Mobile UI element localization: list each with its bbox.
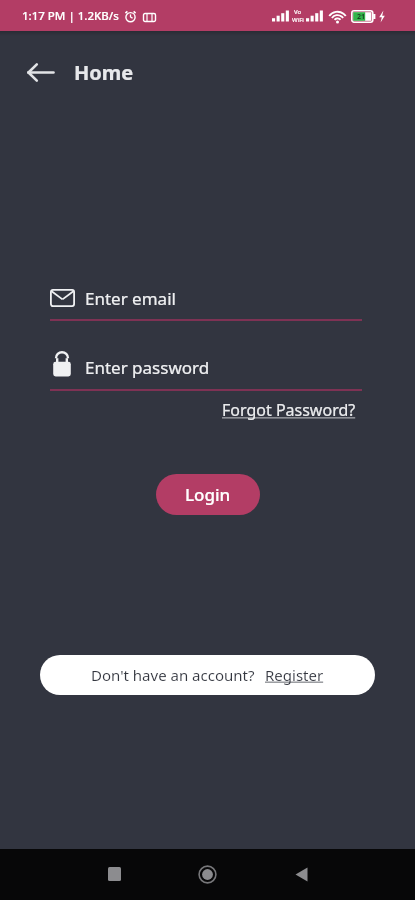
button[interactable]: Don't have an account? (40, 655, 375, 695)
button[interactable]: Enter email (50, 284, 362, 321)
staticText: 1:17 PM | 1.2KB/s (22, 8, 119, 24)
staticText: Register (265, 665, 324, 685)
staticText: Enter password (85, 356, 210, 379)
staticText: Home (74, 59, 134, 86)
staticText: Enter email (85, 287, 176, 310)
staticText: Don't have an account? (91, 665, 255, 685)
button[interactable] (24, 56, 58, 88)
staticText: WiFi (292, 16, 304, 24)
button[interactable] (99, 859, 129, 889)
staticText: Login (185, 483, 231, 506)
staticText: Vo (294, 8, 302, 16)
button[interactable] (192, 859, 222, 889)
button[interactable]: Forgot Password? (222, 399, 356, 421)
button[interactable]: Login (156, 474, 260, 515)
button[interactable]: Enter password (50, 350, 362, 391)
button[interactable] (286, 859, 316, 889)
staticText: 21 (357, 12, 366, 22)
